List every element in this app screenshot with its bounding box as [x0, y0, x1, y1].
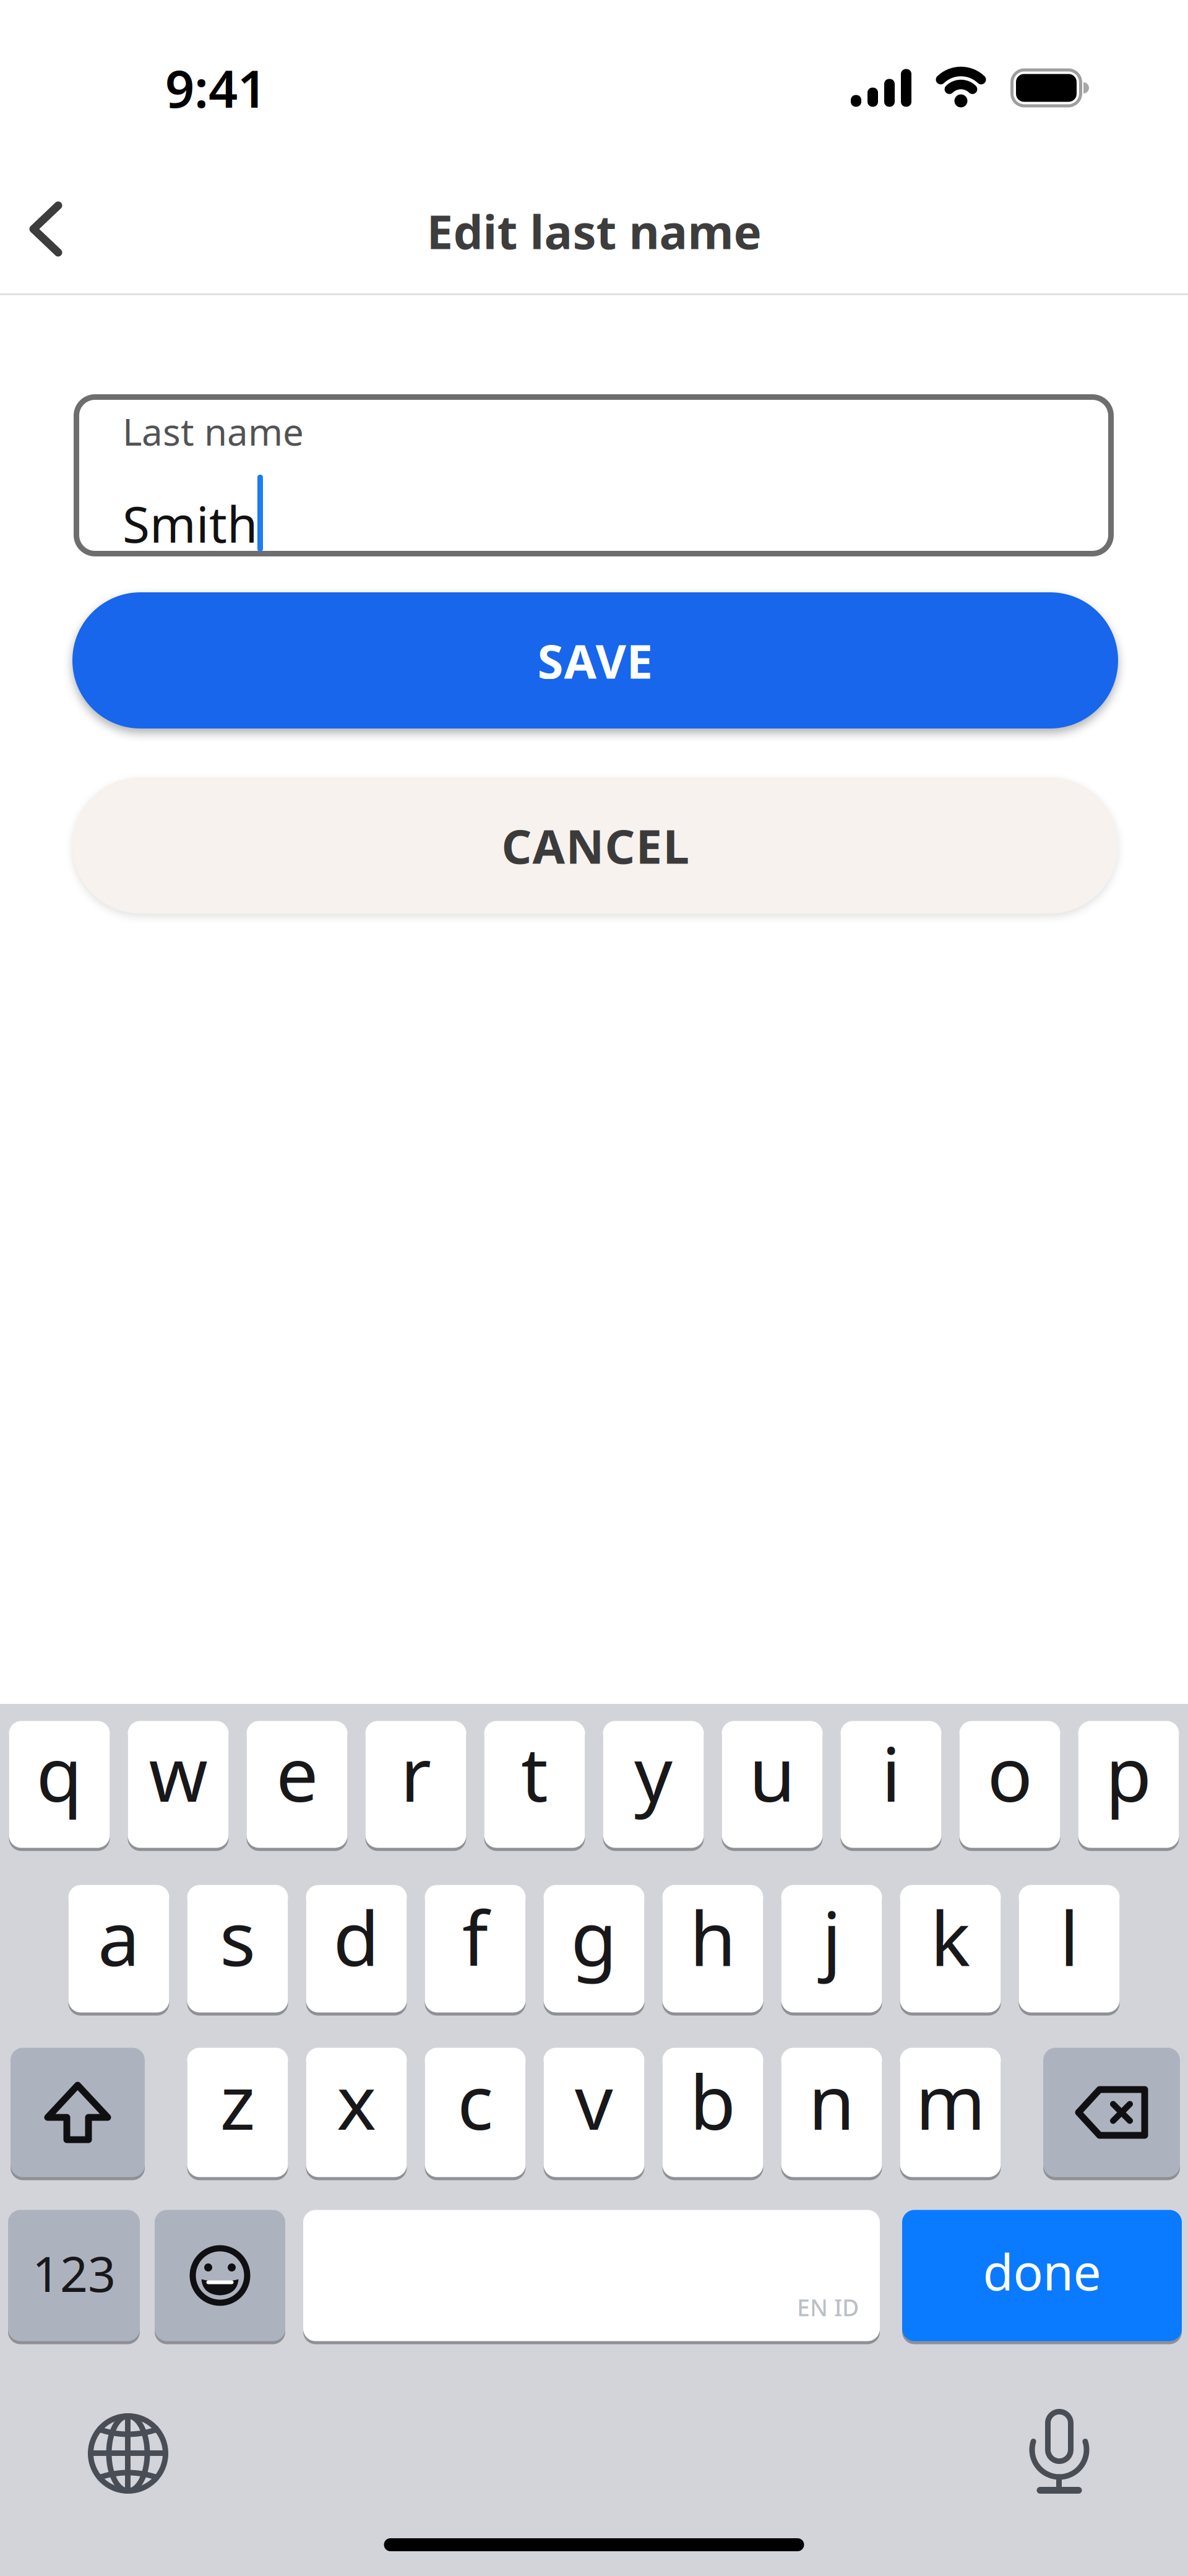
button[interactable]: n [781, 2046, 882, 2179]
staticText: a [98, 1887, 140, 1987]
button[interactable]: CANCEL [0, 777, 1188, 914]
staticText: g [571, 1887, 617, 1987]
staticText: z [220, 2051, 255, 2150]
button[interactable]: g [544, 1883, 644, 2014]
button[interactable] [1028, 2404, 1090, 2503]
staticText: e [276, 1723, 318, 1822]
button[interactable] [1043, 2046, 1180, 2179]
button[interactable]: y [603, 1719, 704, 1849]
staticText: c [457, 2051, 493, 2150]
button[interactable]: o [959, 1719, 1060, 1849]
button[interactable]: h [662, 1883, 763, 2014]
staticText: b [690, 2051, 736, 2150]
staticText: i [881, 1723, 901, 1822]
staticText: SAVE [537, 629, 653, 692]
staticText: d [333, 1887, 380, 1987]
staticText: EN ID [797, 2292, 859, 2323]
button[interactable]: a [68, 1883, 169, 2014]
button[interactable]: SAVE [0, 592, 1188, 728]
button[interactable]: f [425, 1883, 526, 2014]
staticText: p [1105, 1723, 1152, 1822]
staticText: j [822, 1887, 841, 1987]
staticText: f [462, 1887, 488, 1987]
button[interactable]: b [662, 2046, 763, 2179]
staticText: Smith [123, 491, 257, 556]
staticText: k [930, 1887, 971, 1987]
button[interactable]: r [365, 1719, 466, 1849]
button[interactable]: l [1019, 1883, 1120, 2014]
button[interactable]: q [9, 1719, 110, 1849]
button[interactable]: done [902, 2208, 1182, 2343]
button[interactable]: j [781, 1883, 882, 2014]
button[interactable] [155, 2208, 285, 2343]
button[interactable]: p [1078, 1719, 1179, 1849]
button[interactable] [11, 2046, 145, 2179]
button[interactable]: u [722, 1719, 823, 1849]
button[interactable]: t [484, 1719, 585, 1849]
staticText: m [915, 2051, 985, 2150]
staticText: q [36, 1723, 83, 1822]
button[interactable]: i [841, 1719, 941, 1849]
staticText: v [575, 2051, 613, 2150]
staticText: 123 [32, 2241, 116, 2305]
staticText: h [690, 1887, 736, 1987]
button[interactable]: e [247, 1719, 347, 1849]
staticText: done [983, 2238, 1101, 2304]
button[interactable]: m [900, 2046, 1001, 2179]
button[interactable]: EN ID [303, 2208, 880, 2343]
staticText: CANCEL [501, 814, 689, 877]
staticText: r [400, 1723, 431, 1822]
staticText: w [149, 1723, 208, 1822]
staticText: x [337, 2051, 376, 2150]
button[interactable]: k [900, 1883, 1001, 2014]
staticText: s [220, 1887, 256, 1987]
button[interactable]: c [425, 2046, 526, 2179]
staticText: u [749, 1723, 795, 1822]
staticText: Edit last name [427, 200, 761, 262]
button[interactable]: z [187, 2046, 288, 2179]
button[interactable]: Last name [0, 394, 1188, 556]
staticText: 9:41 [165, 54, 267, 122]
staticText: o [987, 1723, 1032, 1822]
staticText: t [521, 1723, 548, 1822]
button[interactable]: 123 [8, 2208, 140, 2343]
button[interactable]: d [306, 1883, 407, 2014]
button[interactable]: v [544, 2046, 644, 2179]
button[interactable] [0, 211, 83, 258]
button[interactable]: s [187, 1883, 288, 2014]
button[interactable]: x [306, 2046, 407, 2179]
button[interactable] [88, 2413, 168, 2494]
button[interactable]: w [128, 1719, 229, 1849]
staticText: y [634, 1723, 673, 1822]
staticText: n [808, 2051, 855, 2150]
staticText: l [1060, 1887, 1079, 1987]
staticText: Last name [123, 407, 304, 456]
